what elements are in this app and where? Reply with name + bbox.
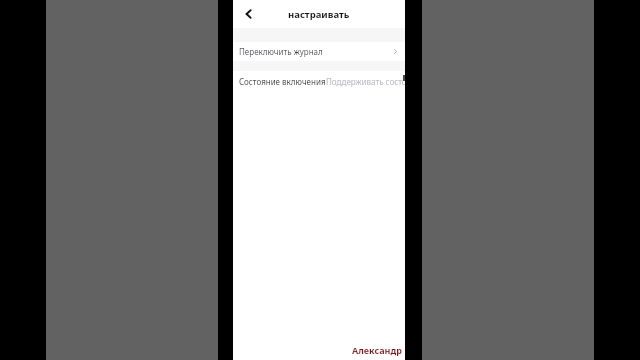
staticText: Александр: [352, 344, 402, 356]
staticText: Поддерживать состояние экрана: [326, 76, 405, 87]
button[interactable]: Переключить журнал: [233, 42, 405, 61]
staticText: Переключить журнал: [239, 46, 323, 57]
staticText: Состояние включения: [239, 76, 326, 87]
button[interactable]: Состояние включения: [233, 71, 405, 91]
staticText: настраивать: [288, 8, 350, 21]
button[interactable]: Back: [238, 3, 260, 25]
